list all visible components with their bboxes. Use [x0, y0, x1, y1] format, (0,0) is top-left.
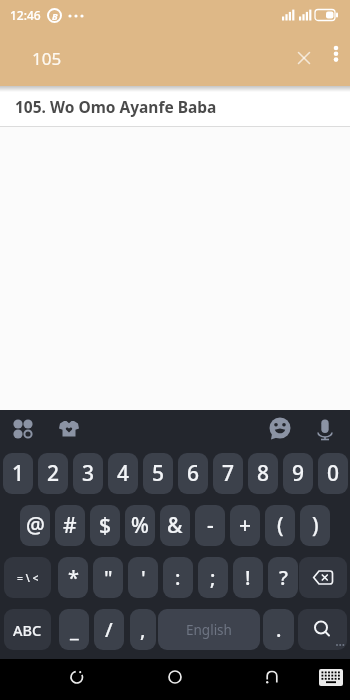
button[interactable]: 4 [108, 453, 138, 494]
staticText: 2 [47, 459, 60, 488]
staticText: & [167, 511, 183, 540]
button[interactable]: = \ < [4, 557, 51, 598]
button[interactable]: ; [198, 557, 228, 598]
staticText: 1 [12, 459, 25, 488]
button[interactable]: + [230, 505, 260, 546]
button[interactable]: 0 [318, 453, 348, 494]
staticText: 0 [327, 459, 340, 488]
button[interactable] [9, 415, 37, 443]
staticText: $ [99, 511, 112, 540]
staticText: 5 [152, 459, 165, 488]
button[interactable]: - [195, 505, 225, 546]
button[interactable]: 1 [3, 453, 33, 494]
staticText: ? [279, 564, 288, 591]
button[interactable]: 6 [178, 453, 208, 494]
staticText: ( [277, 511, 284, 540]
button[interactable]: $ [90, 505, 120, 546]
button[interactable] [57, 657, 97, 697]
staticText: # [63, 511, 77, 540]
staticText: - [207, 511, 214, 540]
button[interactable]: 7 [213, 453, 243, 494]
staticText: 7 [222, 459, 235, 488]
staticText: 9 [292, 459, 305, 488]
button[interactable]: 105. Wo Omo Ayanfe Baba [0, 86, 350, 126]
staticText: 6 [187, 459, 200, 488]
staticText: . [276, 616, 282, 643]
button[interactable]: ( [265, 505, 295, 546]
button[interactable]: * [58, 557, 88, 598]
button[interactable]: ! [233, 557, 263, 598]
staticText: , [140, 616, 146, 643]
button[interactable]: 3 [73, 453, 103, 494]
button[interactable] [311, 657, 350, 697]
staticText: English [186, 621, 232, 639]
staticText: / [105, 616, 113, 643]
button[interactable]: @ [20, 505, 50, 546]
staticText: ' [141, 564, 146, 591]
staticText: + [239, 511, 252, 540]
button[interactable] [266, 415, 294, 443]
button[interactable] [322, 30, 350, 86]
staticText: 12:46 [10, 7, 41, 23]
staticText: @ [26, 511, 45, 540]
button[interactable]: / [94, 609, 124, 650]
staticText: B [52, 10, 58, 22]
staticText: % [131, 511, 149, 540]
button[interactable]: # [55, 505, 85, 546]
staticText: ; [210, 564, 216, 591]
button[interactable]: ABC [4, 609, 51, 650]
staticText: ABC [13, 620, 42, 640]
staticText: 4 [117, 459, 130, 488]
button[interactable]: ) [300, 505, 330, 546]
button[interactable] [155, 657, 195, 697]
button[interactable]: 9 [283, 453, 313, 494]
button[interactable]: & [160, 505, 190, 546]
staticText: 8 [257, 459, 270, 488]
button[interactable]: 2 [38, 453, 68, 494]
button[interactable]: , [130, 609, 156, 650]
staticText: * [68, 564, 79, 591]
button[interactable] [299, 557, 347, 598]
button[interactable] [252, 657, 292, 697]
staticText: 105. Wo Omo Ayanfe Baba [15, 96, 217, 117]
staticText: = \ < [17, 571, 39, 585]
button[interactable]: " [93, 557, 123, 598]
button[interactable]: 8 [248, 453, 278, 494]
button[interactable]: ? [268, 557, 298, 598]
button[interactable]: 5 [143, 453, 173, 494]
button[interactable]: . [263, 609, 294, 650]
button[interactable]: ' [128, 557, 158, 598]
staticText: : [175, 564, 181, 591]
staticText: ! [245, 564, 251, 591]
button[interactable]: % [125, 505, 155, 546]
staticText: ) [312, 511, 319, 540]
button[interactable] [298, 609, 347, 650]
button[interactable] [286, 40, 322, 76]
staticText: 3 [82, 459, 95, 488]
staticText: _ [70, 616, 79, 643]
button[interactable] [311, 415, 339, 443]
button[interactable]: _ [59, 609, 89, 650]
staticText: 105 [32, 47, 62, 70]
button[interactable]: : [163, 557, 193, 598]
button[interactable]: English [158, 609, 260, 650]
button[interactable] [55, 415, 83, 443]
staticText: " [104, 564, 113, 591]
